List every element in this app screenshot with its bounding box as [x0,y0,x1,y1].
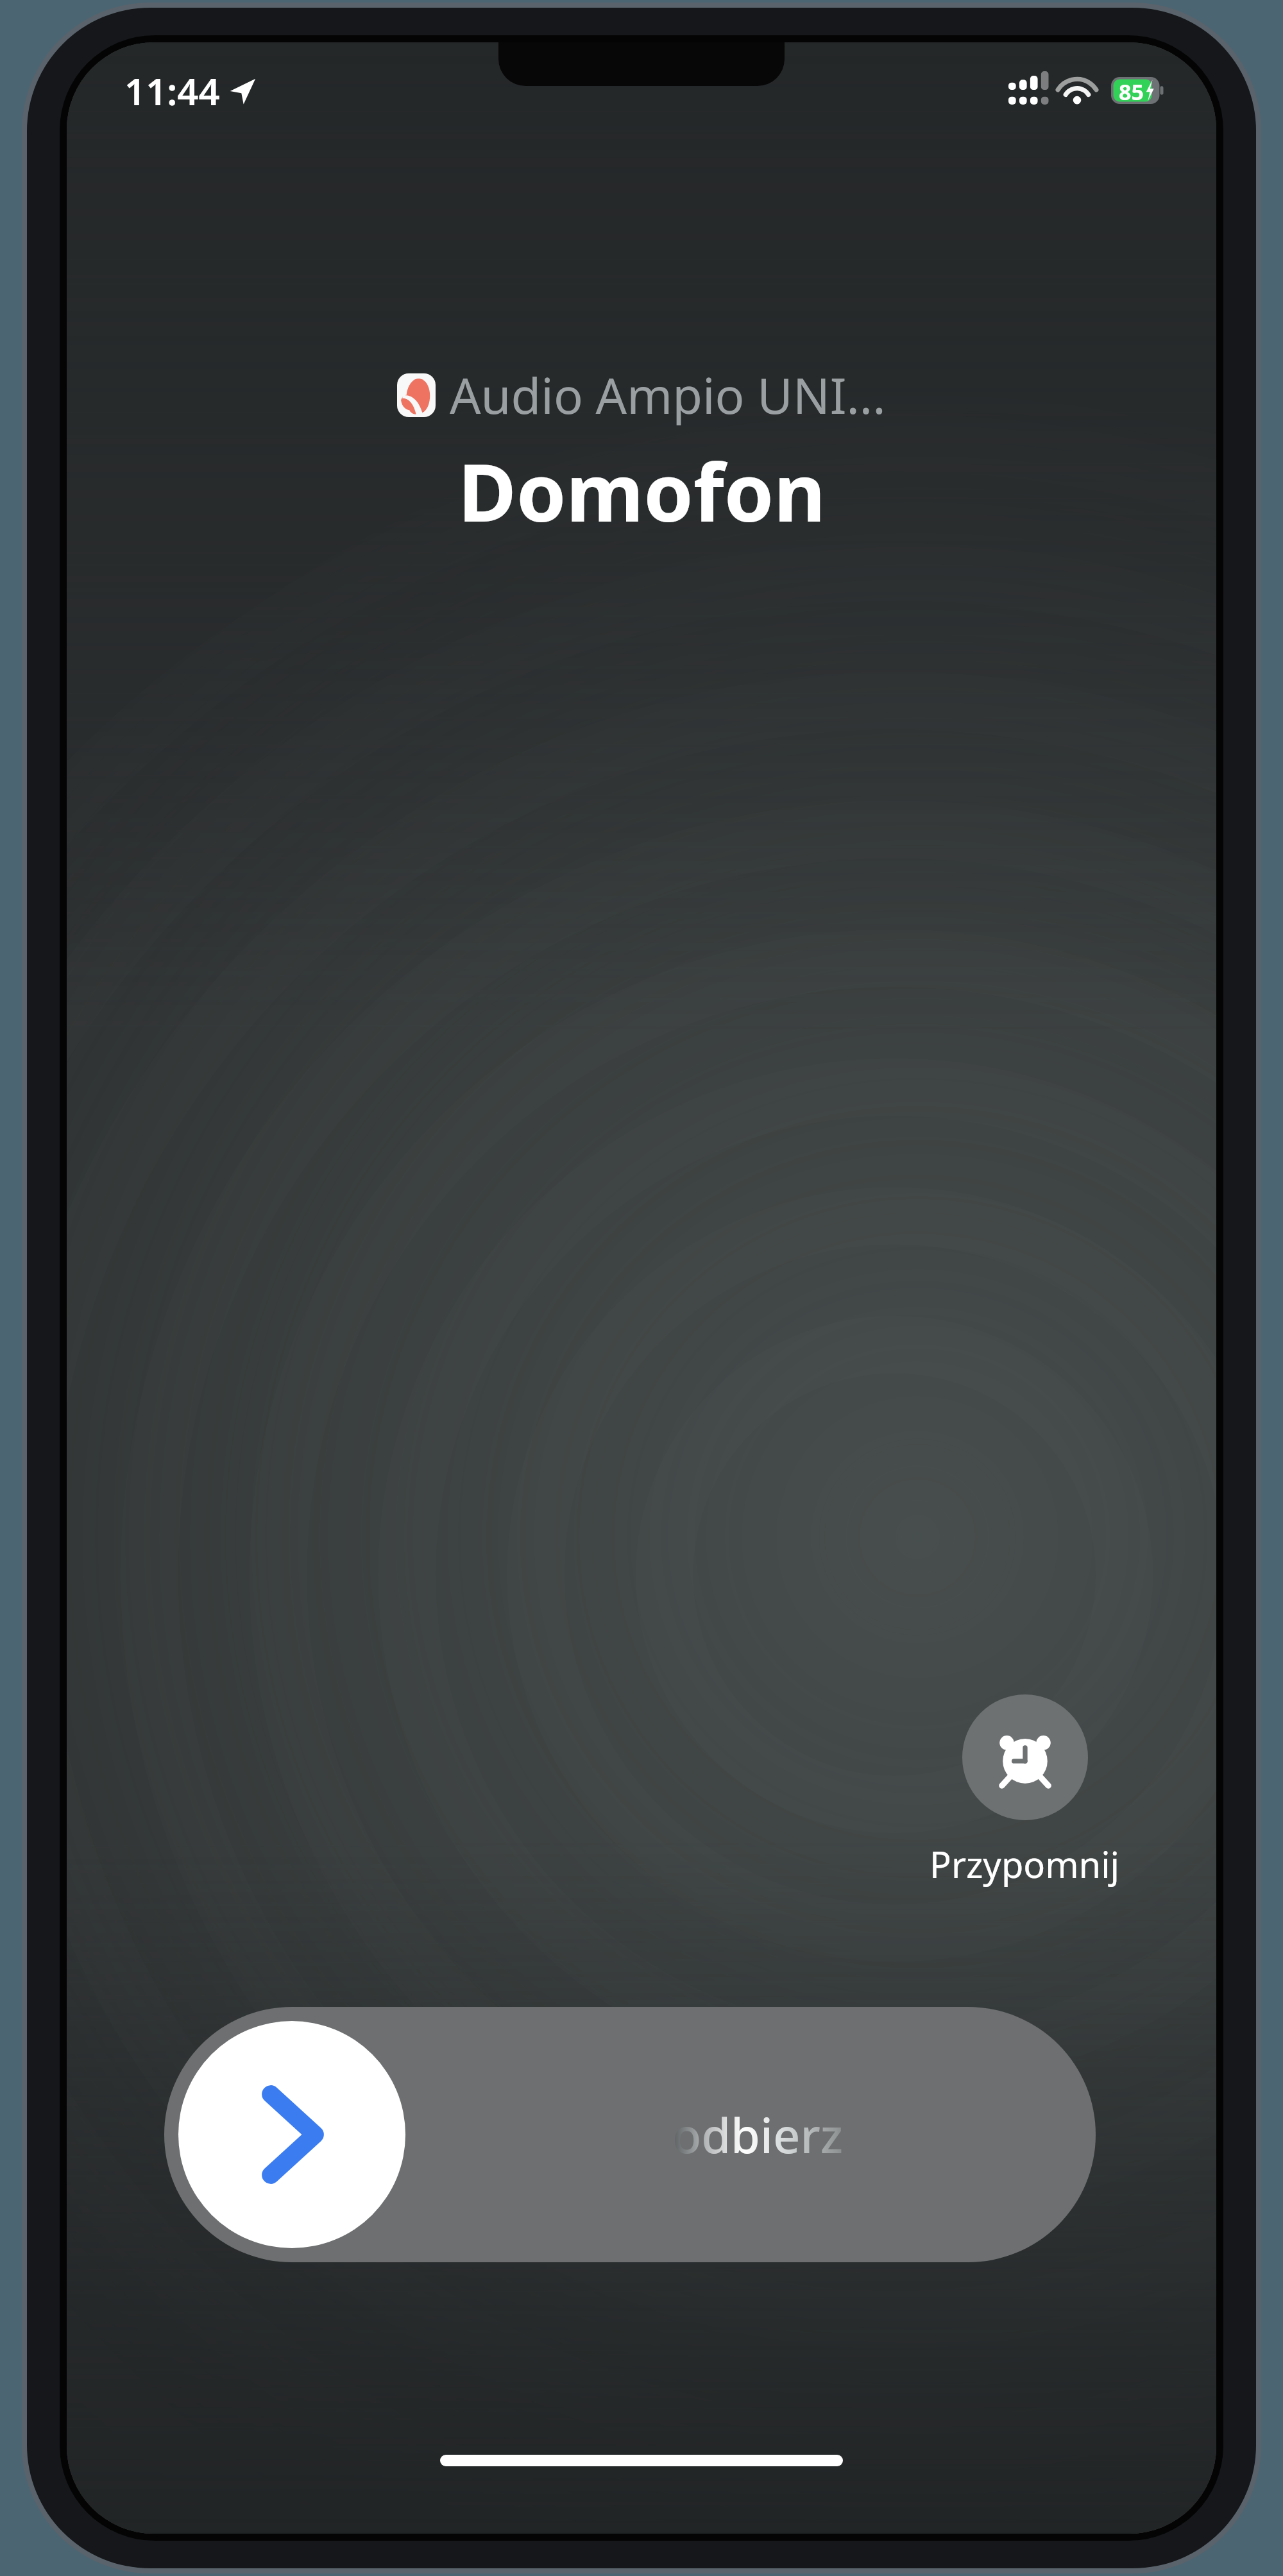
staticText: 85 [1119,77,1144,104]
staticText: Przypomnij [930,1839,1120,1888]
button[interactable]: Odbierz [164,2007,1096,2262]
staticText: odbierz [672,2103,844,2167]
other: Przypomnij [962,1694,1088,1820]
button[interactable]: Przypomnij [930,1694,1120,1888]
staticText: 11:44 [124,65,220,116]
staticText: Domofon [458,436,826,545]
staticText: Audio Ampio UNI... [450,362,886,429]
